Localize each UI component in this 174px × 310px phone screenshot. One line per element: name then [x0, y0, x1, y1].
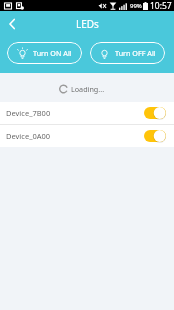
button[interactable]: Device_7B00 — [0, 102, 174, 124]
staticText: Device_7B00 — [6, 108, 51, 118]
button[interactable]: Toggle device — [144, 130, 166, 142]
button[interactable]: Device_0A00 — [0, 125, 174, 147]
button[interactable]: Toggle device — [144, 107, 166, 119]
staticText: Loading... — [71, 84, 105, 94]
button[interactable]: Turn ON All — [7, 42, 82, 64]
button[interactable]: Turn OFF All — [90, 42, 165, 64]
staticText: 10:57 — [150, 0, 172, 11]
staticText: 99% — [130, 2, 142, 10]
staticText: Turn ON All — [33, 48, 72, 58]
staticText: Device_0A00 — [6, 131, 51, 141]
button[interactable]: Back — [0, 11, 24, 36]
staticText: Turn OFF All — [115, 48, 156, 58]
staticText: LEDs — [76, 17, 99, 31]
